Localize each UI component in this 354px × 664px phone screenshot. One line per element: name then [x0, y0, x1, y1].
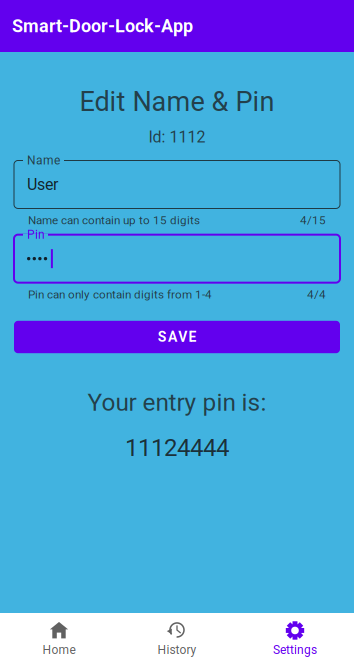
button[interactable]: SAVE	[14, 321, 340, 353]
staticText: Pin	[27, 228, 45, 242]
staticText: User	[27, 175, 58, 194]
staticText: 4/4	[307, 288, 326, 301]
staticText: SAVE	[158, 329, 196, 345]
staticText: 4/15	[300, 213, 326, 227]
button[interactable]: Settings	[236, 612, 354, 664]
staticText: Name can contain up to 15 digits	[28, 213, 200, 227]
staticText: History	[157, 643, 196, 657]
staticText: 11124444	[125, 434, 229, 462]
staticText: Home	[42, 643, 75, 657]
staticText: Edit Name & Pin	[79, 86, 274, 118]
staticText: Id: 1112	[148, 128, 205, 146]
staticText: Smart-Door-Lock-App	[12, 15, 193, 37]
staticText: Pin can only contain digits from 1-4	[28, 288, 212, 301]
button[interactable]: Home	[0, 612, 118, 664]
staticText: Your entry pin is:	[87, 388, 266, 417]
button[interactable]: History	[118, 612, 236, 664]
staticText: Settings	[273, 643, 317, 657]
staticText: Name	[27, 153, 60, 168]
